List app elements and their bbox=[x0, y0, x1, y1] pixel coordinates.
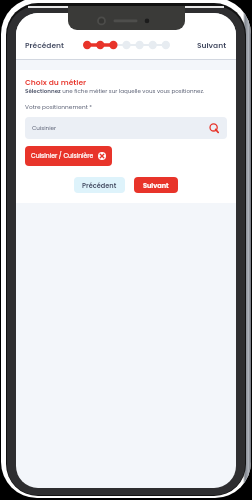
staticText: Votre positionnement * bbox=[25, 103, 93, 111]
staticText: Cuisinier bbox=[32, 124, 57, 132]
staticText: Suivant bbox=[197, 40, 227, 50]
staticText: Suivant bbox=[143, 181, 169, 190]
staticText: Cuisinier / Cuisinière bbox=[31, 152, 94, 161]
other: Rechercher bbox=[209, 123, 220, 134]
staticText: Choix du métier bbox=[25, 77, 87, 88]
button[interactable]: Cuisinier / Cuisinière bbox=[25, 146, 112, 166]
button[interactable]: Précédent bbox=[23, 38, 66, 53]
button[interactable]: Cuisinier bbox=[25, 117, 227, 139]
staticText: Précédent bbox=[25, 40, 64, 50]
other: Retirer bbox=[98, 152, 106, 160]
staticText: Précédent bbox=[82, 181, 117, 190]
button[interactable]: Précédent bbox=[74, 177, 125, 193]
staticText: Sélectionnez une fiche métier sur laquel… bbox=[25, 87, 205, 95]
button[interactable]: Suivant bbox=[195, 38, 229, 53]
button[interactable]: Suivant bbox=[134, 177, 178, 193]
